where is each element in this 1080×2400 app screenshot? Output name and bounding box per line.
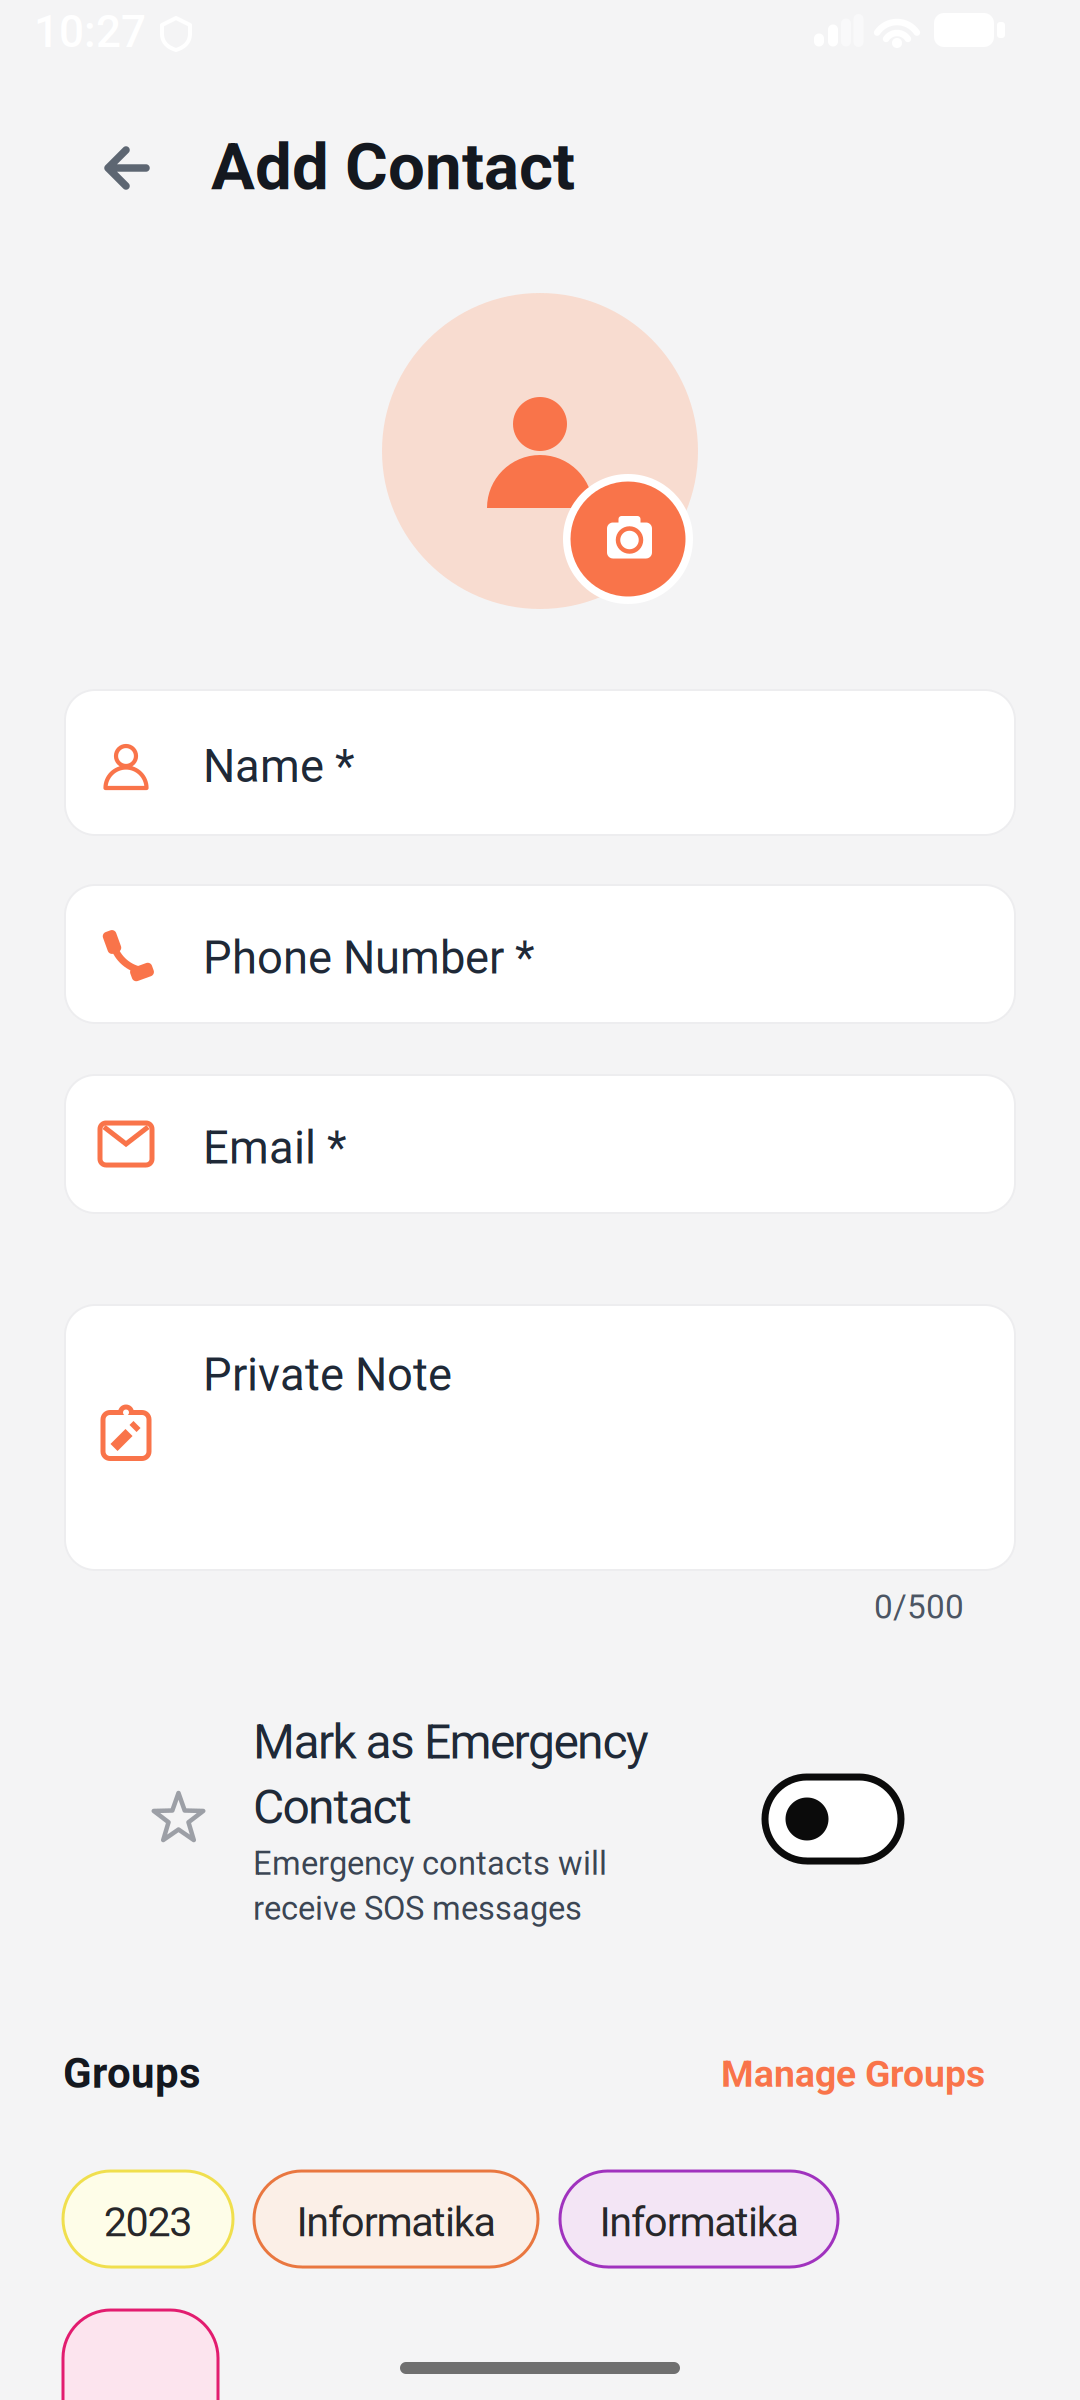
staticText: Informatika [296,2198,495,2246]
staticText: Manage Groups [721,2052,985,2096]
staticText: Emergency contacts will [253,1844,607,1883]
staticText: 0/500 [874,1587,964,1627]
staticText: Phone Number * [203,931,535,984]
staticText: Add Contact [211,129,575,205]
staticText: Groups [63,2049,201,2098]
staticText: Email * [203,1121,347,1174]
button[interactable]: Private Note [65,1305,1015,1570]
button[interactable]: Add photo [563,474,693,604]
button[interactable]: Mark as Emergency Contact [765,1777,901,1861]
button[interactable]: Manage Groups [585,2052,985,2096]
button[interactable]: 2023 [63,2171,233,2267]
staticText: 2023 [104,2198,192,2246]
button[interactable]: Phone Number * [65,885,1015,1023]
staticText: Informatika [599,2198,798,2246]
staticText: Name * [203,740,355,793]
staticText: 10:27 [34,6,146,58]
staticText: receive SOS messages [253,1889,582,1928]
staticText: Private Note [203,1348,452,1401]
button[interactable]: Informatika [560,2171,838,2267]
button[interactable]: Back [101,143,151,193]
button[interactable]: Informatika [254,2171,538,2267]
staticText: Contact [253,1779,412,1835]
button[interactable]: Email * [65,1075,1015,1213]
button[interactable]: Group [63,2310,218,2400]
staticText: Mark as Emergency [253,1714,649,1770]
button[interactable]: Name * [65,690,1015,835]
